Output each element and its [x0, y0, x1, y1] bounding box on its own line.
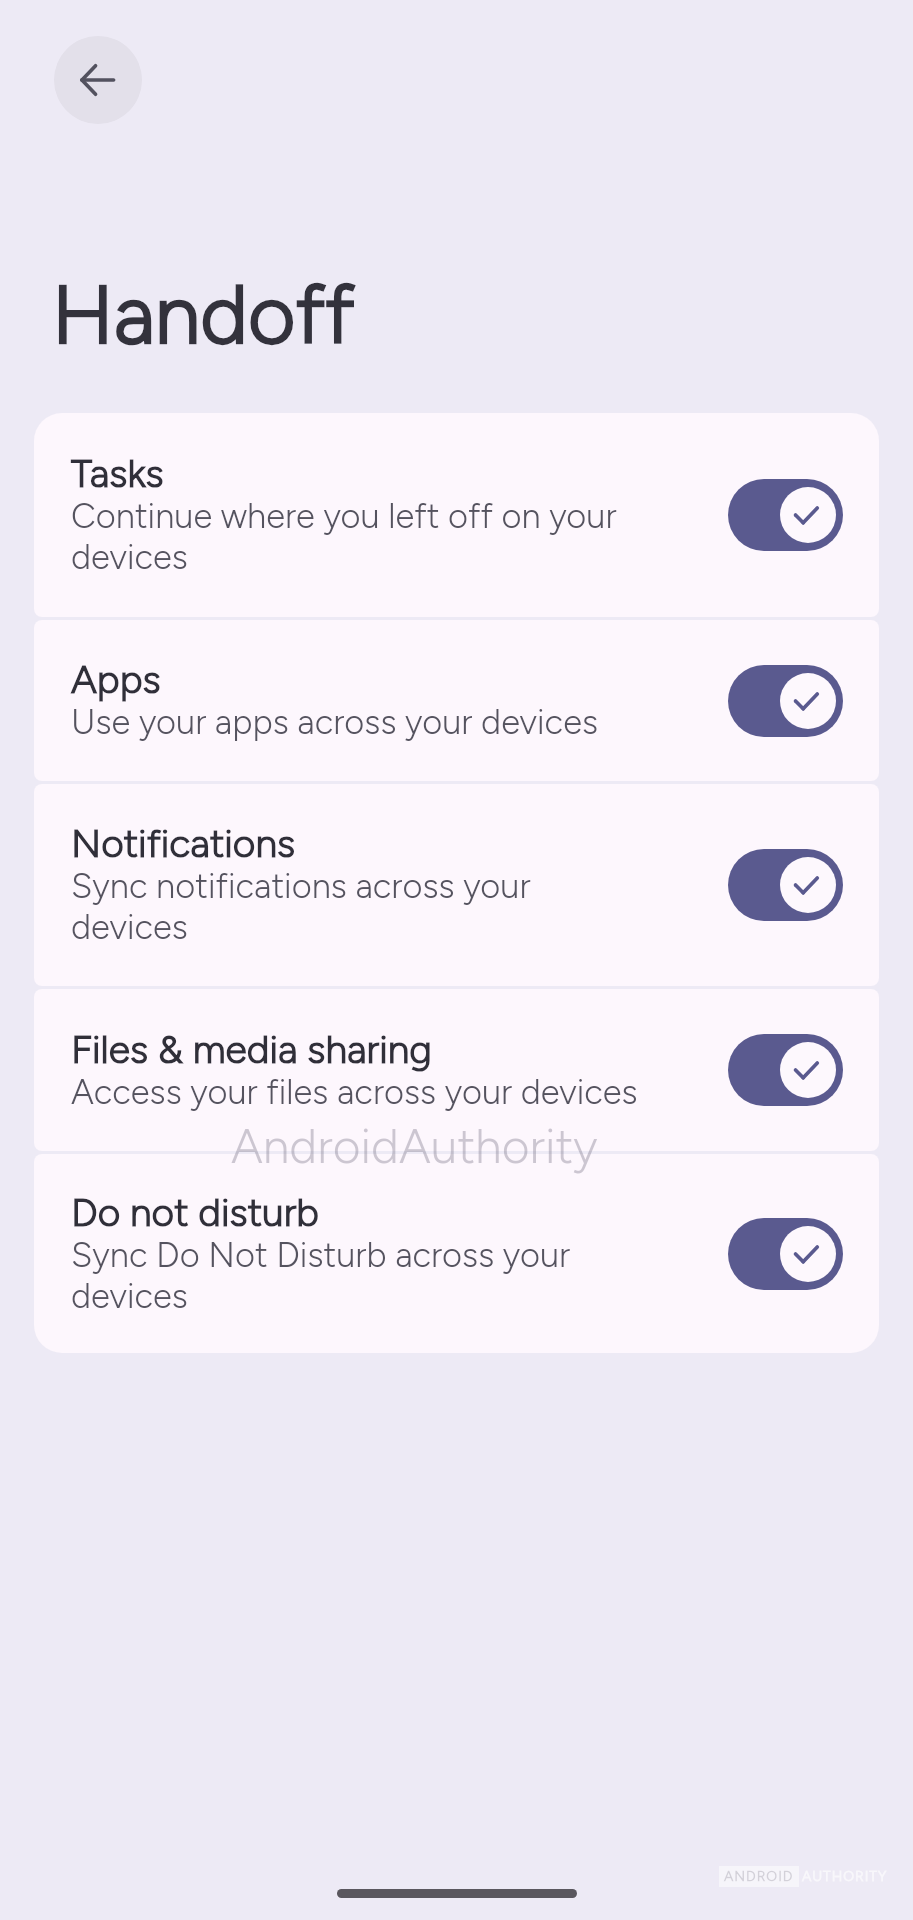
button[interactable]: Toggle Tasks — [728, 479, 843, 551]
staticText: Access your files across your devices — [71, 1072, 638, 1113]
staticText: Handoff — [52, 275, 355, 361]
button[interactable]: Do not disturb — [34, 1154, 879, 1353]
button[interactable]: Back — [54, 36, 142, 124]
staticText: Do not disturb — [71, 1191, 319, 1235]
button[interactable]: Apps — [34, 620, 879, 781]
staticText: ANDROID — [724, 1869, 794, 1884]
button[interactable]: Toggle Apps — [728, 665, 843, 737]
staticText: AUTHORITY — [802, 1869, 888, 1884]
staticText: Apps — [71, 658, 161, 702]
staticText: Files & media sharing — [71, 1028, 433, 1072]
staticText: Notifications — [71, 822, 296, 866]
staticText: Sync notifications across your devices — [71, 866, 531, 948]
button[interactable]: Files & media sharing — [34, 989, 879, 1151]
button[interactable]: Toggle Notifications — [728, 849, 843, 921]
staticText: Sync Do Not Disturb across your devices — [71, 1235, 571, 1317]
staticText: Continue where you left off on your devi… — [71, 496, 617, 578]
button[interactable]: Notifications — [34, 784, 879, 986]
staticText: AndroidAuthority — [231, 1123, 598, 1173]
staticText: Use your apps across your devices — [71, 702, 598, 743]
button[interactable]: Toggle Do not disturb — [728, 1218, 843, 1290]
staticText: Tasks — [71, 452, 164, 496]
button[interactable]: Tasks — [34, 413, 879, 617]
button[interactable]: Toggle Files & media sharing — [728, 1034, 843, 1106]
